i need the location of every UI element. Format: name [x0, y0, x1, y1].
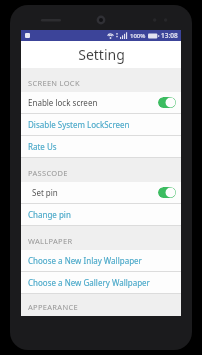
staticText: Choose a New Inlay Wallpaper — [28, 255, 142, 266]
staticText: 13:08 — [161, 31, 178, 40]
staticText: PASSCODE — [28, 168, 68, 178]
staticText: Change pin — [28, 209, 71, 220]
staticText: Enable lock screen — [28, 97, 98, 108]
staticText: Set pin — [32, 187, 58, 198]
button[interactable]: Set pin — [21, 182, 181, 203]
staticText: WALLPAPER — [28, 236, 73, 246]
staticText: Setting — [78, 45, 125, 64]
staticText: APPEARANCE — [28, 302, 78, 312]
staticText: SCREEN LOCK — [28, 78, 80, 88]
staticText: 100% — [130, 32, 146, 40]
staticText: Rate Us — [28, 141, 57, 152]
button[interactable]: Enable lock screen — [21, 92, 181, 113]
button[interactable]: Change pin — [21, 204, 181, 225]
button[interactable]: Disable System LockScreen — [21, 114, 181, 135]
button[interactable]: Toggle setting — [158, 97, 176, 108]
staticText: Disable System LockScreen — [28, 119, 130, 130]
button[interactable]: Choose a New Inlay Wallpaper — [21, 250, 181, 271]
button[interactable]: Toggle setting — [158, 187, 176, 198]
button[interactable]: Choose a New Gallery Wallpaper — [21, 272, 181, 293]
button[interactable]: Rate Us — [21, 136, 181, 157]
staticText: Choose a New Gallery Wallpaper — [28, 277, 150, 288]
